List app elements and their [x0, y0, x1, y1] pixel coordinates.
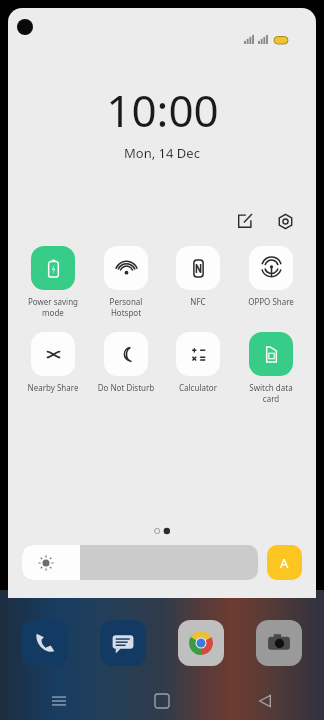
staticText: Switch data card [236, 382, 306, 404]
button[interactable]: Nearby Share [18, 332, 88, 393]
button[interactable]: Phone [22, 620, 68, 666]
button[interactable]: Power saving mode [18, 246, 88, 318]
button[interactable]: Back [252, 688, 278, 714]
button[interactable]: Recents [46, 688, 72, 714]
staticText: Nearby Share [18, 382, 88, 393]
staticText: 10:00 [106, 80, 219, 140]
button[interactable]: Switch data card [236, 332, 306, 404]
staticText: Calculator [163, 382, 233, 393]
staticText: NFC [163, 296, 233, 307]
button[interactable]: Settings [272, 208, 298, 234]
button[interactable]: Brightness [22, 545, 258, 580]
button[interactable]: Calculator [163, 332, 233, 393]
button[interactable]: Edit tiles [232, 208, 258, 234]
button[interactable]: Messages [100, 620, 146, 666]
button[interactable]: OPPO Share [236, 246, 306, 307]
staticText: Power saving mode [18, 296, 88, 318]
button[interactable]: Home [149, 688, 175, 714]
button[interactable]: Camera [256, 620, 302, 666]
staticText: Personal Hotspot [91, 296, 161, 318]
staticText: OPPO Share [236, 296, 306, 307]
staticText: Do Not Disturb [91, 382, 161, 393]
button[interactable]: Chrome [178, 620, 224, 666]
button[interactable]: Auto brightness [267, 545, 302, 580]
button[interactable]: NFC [163, 246, 233, 307]
staticText: Mon, 14 Dec [124, 144, 200, 162]
staticText: A [280, 554, 289, 572]
button[interactable]: Do Not Disturb [91, 332, 161, 393]
button[interactable]: Personal Hotspot [91, 246, 161, 318]
